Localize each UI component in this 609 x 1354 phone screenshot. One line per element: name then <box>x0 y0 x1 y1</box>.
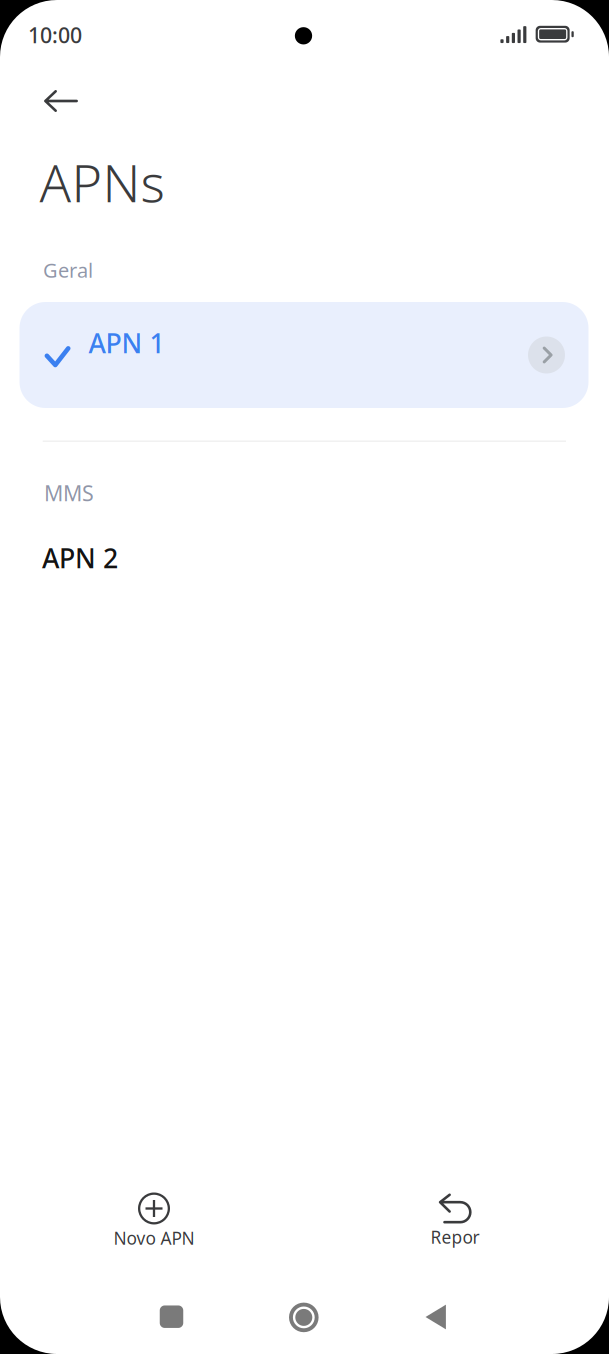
staticText: MMS <box>44 479 94 507</box>
button[interactable]: Home <box>249 1286 359 1348</box>
button[interactable]: APN 1 <box>19 302 588 408</box>
staticText: APN 1 <box>88 325 164 361</box>
button[interactable]: Recent apps <box>116 1286 226 1348</box>
button[interactable]: Novo APN <box>59 1175 249 1267</box>
staticText: APNs <box>39 147 164 217</box>
button[interactable]: Back <box>24 68 98 134</box>
staticText: 10:00 <box>28 21 82 49</box>
staticText: Geral <box>43 257 93 283</box>
button[interactable]: Back <box>381 1286 491 1348</box>
staticText: Novo APN <box>113 1226 194 1249</box>
button[interactable]: APN 2 <box>0 531 609 585</box>
staticText: Repor <box>430 1225 479 1248</box>
staticText: APN 2 <box>42 540 118 576</box>
button[interactable]: Repor <box>360 1175 550 1267</box>
